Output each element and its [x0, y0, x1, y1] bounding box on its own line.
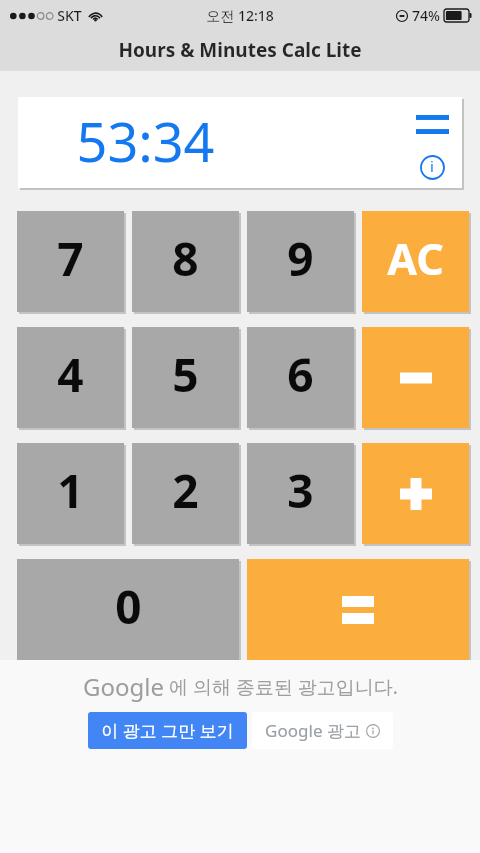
staticText: 74%	[412, 6, 440, 25]
button[interactable]: 6	[247, 327, 354, 428]
button[interactable]: 8	[132, 211, 239, 312]
button[interactable]: Google 광고	[252, 712, 393, 749]
button[interactable]: 1	[17, 443, 124, 544]
staticText: 에 의해 종료된 광고입니다.	[164, 674, 398, 700]
button[interactable]: 5	[132, 327, 239, 428]
staticText: 6	[287, 343, 314, 406]
button[interactable]: Add	[362, 443, 469, 544]
staticText: 오전 12:18	[206, 6, 274, 25]
button[interactable]: Equals	[247, 559, 469, 660]
staticText: 9	[287, 227, 314, 290]
button[interactable]: 이 광고 그만 보기	[88, 712, 247, 749]
staticText: 5	[172, 343, 199, 406]
staticText: i	[430, 156, 434, 176]
staticText: 2	[172, 459, 199, 522]
button[interactable]: 0	[17, 559, 239, 660]
button[interactable]: Info	[416, 151, 448, 183]
staticText: 53:34	[76, 104, 215, 178]
button[interactable]: 7	[17, 211, 124, 312]
staticText: SKT	[57, 6, 82, 25]
button[interactable]: 2	[132, 443, 239, 544]
button[interactable]: 3	[247, 443, 354, 544]
button[interactable]: AC	[362, 211, 469, 312]
staticText: Hours & Minutes Calc Lite	[118, 37, 362, 63]
button[interactable]: 9	[247, 211, 354, 312]
staticText: 이 광고 그만 보기	[101, 719, 234, 742]
staticText: Google	[83, 670, 164, 703]
staticText: 4	[57, 343, 84, 406]
staticText: 1	[57, 459, 84, 522]
staticText: AC	[387, 229, 444, 288]
button[interactable]: Show result	[412, 109, 452, 139]
button[interactable]: Subtract	[362, 327, 469, 428]
staticText: 0	[115, 575, 142, 638]
staticText: Google 광고	[265, 719, 361, 742]
staticText: 3	[287, 459, 314, 522]
button[interactable]: 4	[17, 327, 124, 428]
staticText: 7	[57, 227, 84, 290]
staticText: 8	[172, 227, 199, 290]
